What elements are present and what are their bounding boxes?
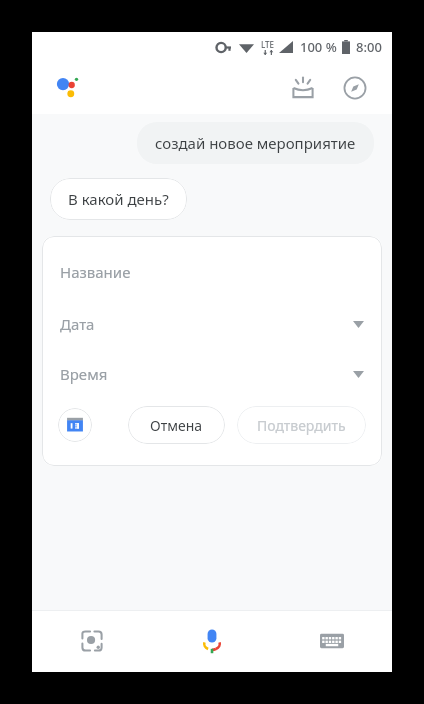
staticText: Отмена	[150, 416, 203, 435]
staticText: LTE	[261, 39, 275, 50]
button[interactable]: Keyboard	[272, 610, 392, 672]
button[interactable]: Google Lens	[32, 610, 152, 672]
button[interactable]: Подтвердить	[237, 406, 366, 444]
button[interactable]: Название	[42, 262, 382, 282]
button[interactable]: Отмена	[128, 406, 225, 444]
staticText: В какой день?	[68, 189, 169, 209]
staticText: 100 %	[300, 38, 337, 56]
button[interactable]: Google Calendar	[58, 408, 92, 442]
button[interactable]: Explore	[336, 69, 374, 107]
staticText: Время	[60, 364, 108, 384]
staticText: Название	[60, 262, 131, 282]
button[interactable]: В какой день?	[50, 178, 187, 220]
staticText: Дата	[60, 314, 95, 334]
staticText: Подтвердить	[257, 416, 346, 435]
button[interactable]: Google Assistant	[52, 71, 86, 105]
button[interactable]: создай новое мероприятие	[137, 122, 374, 164]
button[interactable]: Время	[42, 364, 382, 384]
staticText: 8:00	[356, 38, 382, 56]
button[interactable]: Voice input	[152, 610, 272, 672]
staticText: создай новое мероприятие	[155, 133, 356, 153]
button[interactable]: Дата	[42, 314, 382, 334]
button[interactable]: Snapshot	[284, 69, 322, 107]
